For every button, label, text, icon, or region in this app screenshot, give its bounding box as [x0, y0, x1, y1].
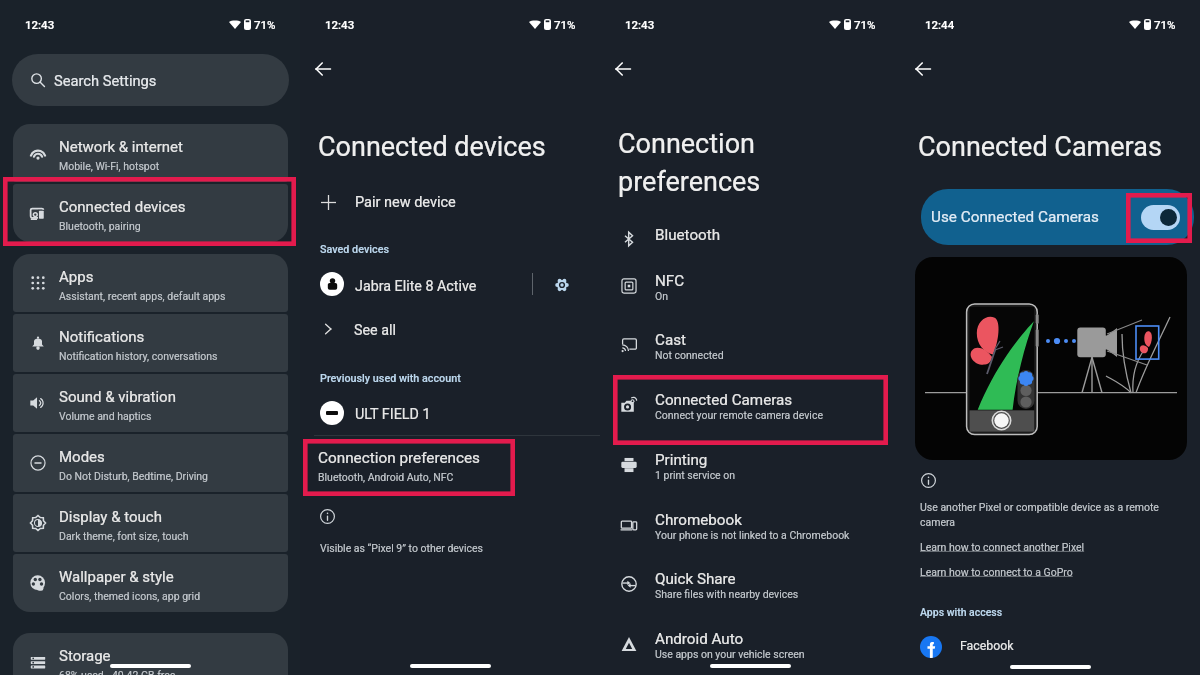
staticText: Storage — [59, 647, 111, 665]
staticText: Share files with nearby devices — [655, 588, 799, 600]
staticText: Apps with access — [920, 606, 1003, 618]
button[interactable]: Chromebook — [600, 496, 900, 554]
staticText: Connection preferences — [618, 128, 761, 198]
staticText: Dark theme, font size, touch — [59, 530, 189, 542]
button[interactable]: Learn how to connect another Pixel — [920, 541, 1085, 553]
staticText: Chromebook — [655, 511, 742, 529]
staticText: Connected Cameras — [655, 391, 793, 409]
button[interactable]: Notifications — [13, 314, 288, 372]
staticText: Visible as “Pixel 9” to other devices — [320, 542, 483, 554]
button[interactable]: Apps — [13, 254, 288, 312]
staticText: Quick Share — [655, 570, 736, 588]
staticText: Apps — [59, 268, 94, 286]
button[interactable]: Pair new device — [300, 184, 600, 220]
staticText: Learn how to connect to a GoPro — [920, 566, 1073, 578]
button[interactable]: Use Connected Cameras — [921, 189, 1194, 245]
button[interactable]: Back — [305, 51, 341, 87]
button[interactable]: Storage — [13, 633, 288, 675]
staticText: Search Settings — [54, 72, 157, 89]
button[interactable]: Display & touch — [13, 494, 288, 552]
staticText: 68% used - 40.42 GB free — [59, 669, 176, 675]
staticText: Jabra Elite 8 Active — [355, 278, 477, 295]
staticText: Bluetooth — [655, 226, 721, 244]
staticText: Connected devices — [59, 198, 186, 216]
staticText: Bluetooth, Android Auto, NFC — [318, 471, 454, 483]
staticText: Facebook — [960, 639, 1014, 653]
staticText: Bluetooth, pairing — [59, 220, 141, 232]
staticText: On — [655, 290, 669, 302]
staticText: Android Auto — [655, 630, 744, 648]
button[interactable]: Learn how to connect to a GoPro — [920, 566, 1073, 578]
staticText: NFC — [655, 272, 685, 290]
button[interactable]: ULT FIELD 1 — [300, 396, 600, 430]
staticText: Pair new device — [355, 194, 456, 211]
staticText: Use another Pixel or compatible device a… — [920, 501, 1159, 528]
staticText: 12:44 — [925, 18, 955, 31]
staticText: 1 print service on — [655, 469, 736, 481]
button[interactable]: Facebook — [900, 631, 1200, 663]
staticText: Sound & vibration — [59, 388, 176, 406]
staticText: 71% — [254, 18, 276, 31]
staticText: Colors, themed icons, app grid — [59, 590, 201, 602]
button[interactable]: Connected Cameras — [600, 376, 900, 434]
button[interactable]: Quick Share — [600, 555, 900, 613]
button[interactable]: Wallpaper & style — [13, 554, 288, 612]
staticText: Previously used with account — [320, 372, 461, 385]
staticText: Notification history, conversations — [59, 350, 218, 362]
staticText: Wallpaper & style — [59, 568, 174, 586]
button[interactable]: Connected devices — [13, 184, 288, 242]
staticText: Connected devices — [318, 131, 546, 163]
button[interactable]: Search Settings — [12, 54, 289, 106]
button[interactable]: Android Auto — [600, 615, 900, 673]
button[interactable]: Network & internet — [13, 124, 288, 182]
staticText: Use apps on your vehicle screen — [655, 648, 805, 660]
staticText: Network & internet — [59, 138, 183, 156]
staticText: 12:43 — [625, 18, 655, 31]
staticText: 71% — [1154, 18, 1176, 31]
staticText: 12:43 — [25, 18, 55, 31]
button[interactable]: Bluetooth — [600, 210, 900, 268]
staticText: Connect your remote camera device — [655, 409, 823, 421]
button[interactable]: Sound & vibration — [13, 374, 288, 432]
staticText: Connection preferences — [318, 449, 480, 467]
button[interactable]: Back — [905, 51, 941, 87]
staticText: Mobile, Wi-Fi, hotspot — [59, 160, 160, 172]
button[interactable]: Cast — [600, 316, 900, 374]
staticText: Use Connected Cameras — [931, 208, 1099, 226]
button[interactable]: Printing — [600, 436, 900, 494]
button[interactable]: NFC — [600, 257, 900, 315]
staticText: Display & touch — [59, 508, 162, 526]
staticText: 71% — [854, 18, 876, 31]
button[interactable]: Device settings — [544, 267, 580, 302]
staticText: See all — [354, 322, 396, 339]
staticText: Learn how to connect another Pixel — [920, 541, 1085, 553]
button[interactable]: Jabra Elite 8 Active — [300, 267, 600, 302]
staticText: Your phone is not linked to a Chromebook — [655, 529, 850, 541]
staticText: ULT FIELD 1 — [355, 406, 431, 423]
staticText: Not connected — [655, 349, 724, 361]
staticText: Do Not Disturb, Bedtime, Driving — [59, 470, 209, 482]
button[interactable]: See all — [300, 313, 600, 346]
staticText: Connected Cameras — [918, 131, 1162, 163]
button[interactable]: Connection preferences — [300, 443, 600, 495]
button[interactable]: Back — [605, 51, 641, 87]
staticText: Printing — [655, 451, 708, 469]
staticText: Notifications — [59, 328, 145, 346]
staticText: Volume and haptics — [59, 410, 152, 422]
staticText: 12:43 — [325, 18, 355, 31]
staticText: Cast — [655, 331, 686, 349]
staticText: Modes — [59, 448, 105, 466]
button[interactable]: Modes — [13, 434, 288, 492]
staticText: 71% — [554, 18, 576, 31]
staticText: Assistant, recent apps, default apps — [59, 290, 226, 302]
staticText: Saved devices — [320, 243, 389, 256]
